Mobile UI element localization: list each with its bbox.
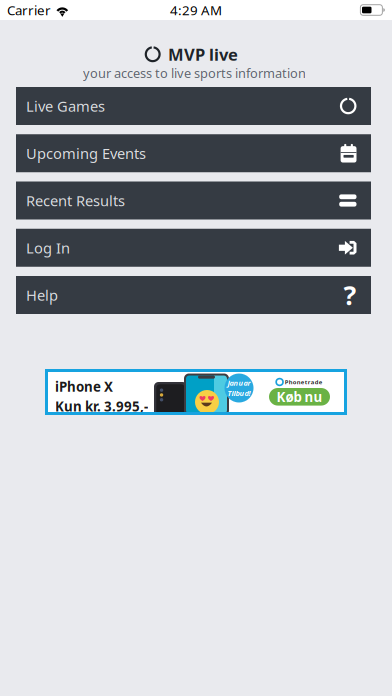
staticText: Live Games <box>26 96 105 116</box>
staticText: Carrier <box>7 1 51 19</box>
button[interactable]: Live Games <box>16 87 371 125</box>
button[interactable]: Januar <box>45 369 347 415</box>
staticText: Tilbud! <box>227 388 250 398</box>
staticText: Phonetrade <box>285 378 323 386</box>
staticText: Recent Results <box>26 190 125 210</box>
button[interactable]: Help <box>16 276 371 314</box>
staticText: Upcoming Events <box>26 143 146 163</box>
staticText: iPhone X <box>55 377 113 396</box>
staticText: Køb nu <box>276 388 322 406</box>
button[interactable]: Upcoming Events <box>16 134 371 172</box>
button[interactable]: Recent Results <box>16 181 371 219</box>
staticText: Januar <box>227 378 250 388</box>
staticText: Help <box>26 285 58 305</box>
staticText: Kun kr. 3.995,- <box>55 397 148 415</box>
staticText: Log In <box>26 238 70 258</box>
staticText: ? <box>343 277 356 313</box>
staticText: MVP live <box>168 43 238 65</box>
staticText: your access to live sports information <box>83 64 306 82</box>
staticText: 4:29 AM <box>170 1 222 19</box>
button[interactable]: Log In <box>16 229 371 267</box>
